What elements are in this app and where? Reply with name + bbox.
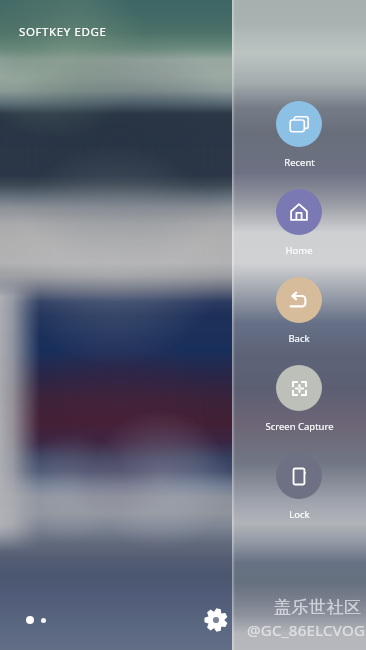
button[interactable]: Back [232,277,366,365]
button[interactable]: Recent [232,101,366,189]
staticText: Home [285,244,313,257]
button[interactable]: Screen Capture [232,365,366,453]
staticText: Back [288,332,310,345]
staticText: Recent [284,156,315,169]
button[interactable]: Settings [202,606,230,634]
staticText: 盖乐世社区 [274,597,362,618]
staticText: SOFTKEY EDGE [19,24,107,40]
button[interactable]: Home [232,189,366,277]
button[interactable]: Lock [232,453,366,541]
staticText: Lock [289,508,310,521]
staticText: @GC_86ELCVOG [247,620,366,640]
staticText: Screen Capture [265,420,334,433]
